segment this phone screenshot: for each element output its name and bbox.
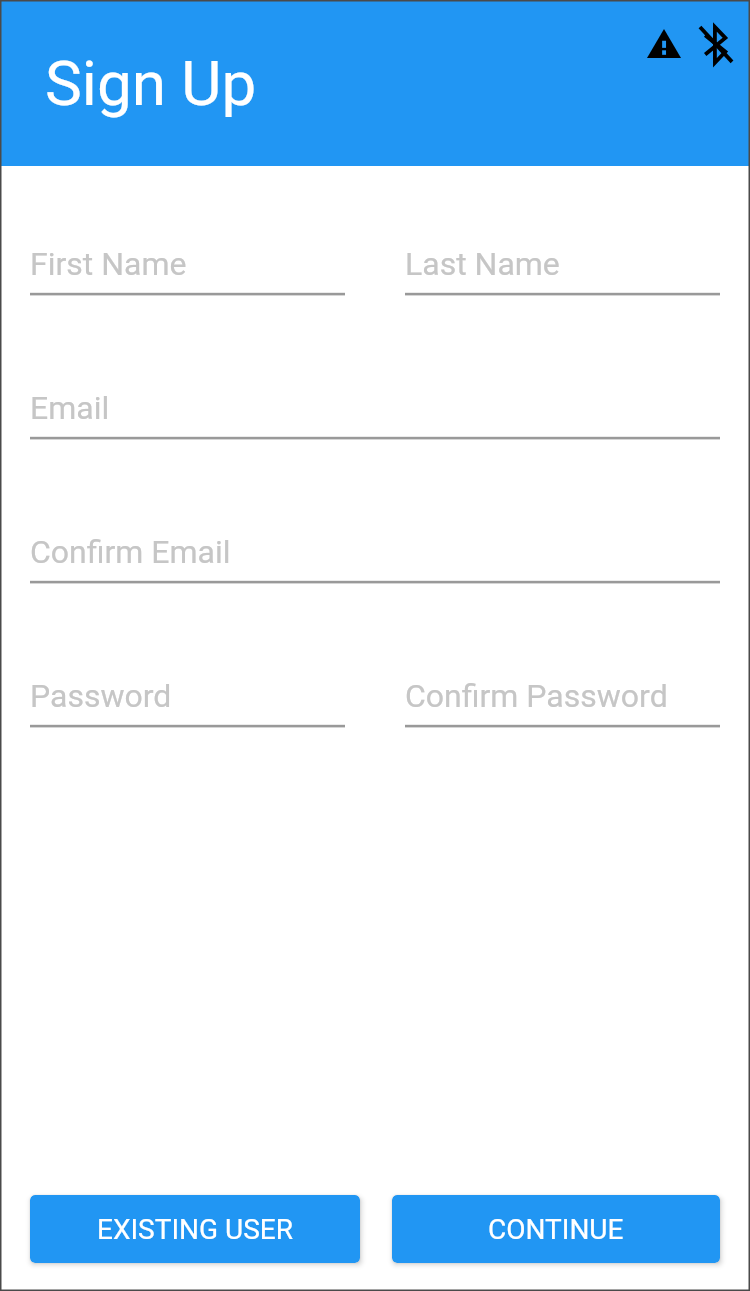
staticText: Password <box>30 677 172 715</box>
button[interactable]: Warning <box>647 29 681 58</box>
staticText: Confirm Email <box>30 533 231 571</box>
staticText: CONTINUE <box>488 1213 624 1246</box>
staticText: First Name <box>30 245 187 283</box>
button[interactable]: Bluetooth disabled <box>698 23 734 65</box>
button[interactable]: CONTINUE <box>392 1195 720 1263</box>
staticText: Email <box>30 389 110 427</box>
button[interactable]: Password <box>30 598 345 742</box>
button[interactable]: Confirm Password <box>405 598 720 742</box>
button[interactable]: Confirm Email <box>30 454 720 598</box>
staticText: Sign Up <box>45 47 257 120</box>
button[interactable]: First Name <box>30 166 345 310</box>
staticText: Last Name <box>405 245 560 283</box>
button[interactable]: Email <box>30 310 720 454</box>
staticText: EXISTING USER <box>97 1213 293 1246</box>
button[interactable]: EXISTING USER <box>30 1195 360 1263</box>
staticText: Confirm Password <box>405 677 668 715</box>
button[interactable]: Last Name <box>405 166 720 310</box>
